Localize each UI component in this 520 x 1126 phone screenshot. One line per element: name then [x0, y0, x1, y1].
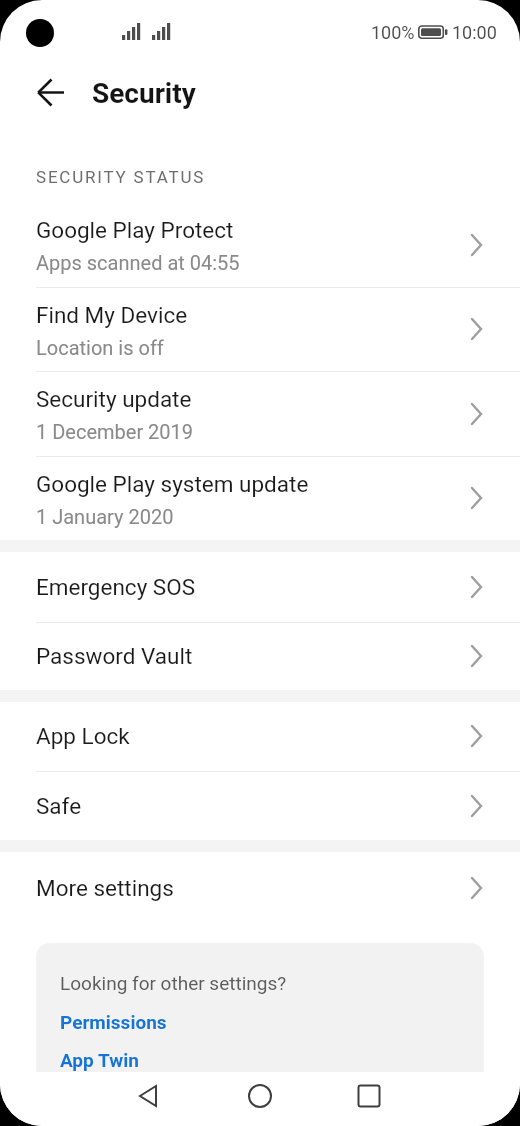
button[interactable] — [26, 68, 76, 118]
button[interactable] — [240, 1076, 280, 1116]
staticText: Password Vault — [36, 643, 193, 669]
button[interactable] — [0, 702, 520, 771]
staticText: Security — [92, 77, 196, 110]
staticText: Google Play system update — [36, 471, 309, 497]
staticText: App Lock — [36, 723, 130, 749]
button[interactable] — [0, 457, 520, 540]
staticText: Looking for other settings? — [60, 972, 287, 994]
button[interactable] — [0, 288, 520, 371]
staticText: 1 December 2019 — [36, 420, 194, 443]
staticText: 1 January 2020 — [36, 505, 174, 528]
button[interactable]: App Twin — [60, 1038, 139, 1082]
staticText: Safe — [36, 793, 82, 819]
staticText: More settings — [36, 875, 174, 901]
button[interactable] — [0, 552, 520, 622]
button[interactable] — [128, 1076, 168, 1116]
button[interactable]: Permissions — [60, 1000, 167, 1044]
staticText: Find My Device — [36, 302, 188, 328]
staticText: Permissions — [60, 1011, 167, 1033]
staticText: App Twin — [60, 1049, 139, 1071]
staticText: Google Play Protect — [36, 217, 234, 243]
staticText: Location is off — [36, 336, 164, 359]
staticText: 100% — [371, 22, 415, 43]
button[interactable] — [0, 623, 520, 690]
staticText: Security update — [36, 386, 192, 412]
button[interactable] — [349, 1076, 389, 1116]
button[interactable] — [0, 372, 520, 456]
staticText: Apps scanned at 04:55 — [36, 251, 240, 274]
staticText: Emergency SOS — [36, 574, 196, 600]
staticText: 10:00 — [452, 22, 497, 43]
button[interactable] — [0, 772, 520, 840]
button[interactable] — [0, 852, 520, 924]
button[interactable] — [0, 203, 520, 287]
staticText: SECURITY STATUS — [36, 167, 206, 187]
